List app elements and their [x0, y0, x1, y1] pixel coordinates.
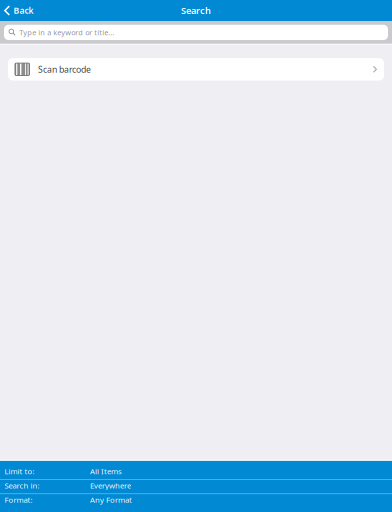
button[interactable]: Type in a keyword or title...: [4, 25, 388, 40]
staticText: Search: [181, 4, 211, 17]
button[interactable]: Back: [0, 0, 38, 21]
button[interactable]: Scan barcode: [8, 58, 384, 80]
staticText: All Items: [90, 466, 122, 476]
staticText: Type in a keyword or title...: [19, 27, 114, 37]
button[interactable]: Limit to:: [0, 466, 392, 480]
button[interactable]: Search in:: [0, 480, 392, 494]
staticText: Scan barcode: [38, 63, 91, 75]
staticText: Format:: [5, 494, 33, 505]
staticText: Any Format: [90, 494, 132, 505]
staticText: Limit to:: [5, 466, 35, 476]
staticText: Back: [14, 5, 34, 16]
button[interactable]: Format:: [0, 494, 392, 508]
staticText: Search in:: [5, 480, 40, 491]
staticText: Everywhere: [90, 480, 131, 491]
